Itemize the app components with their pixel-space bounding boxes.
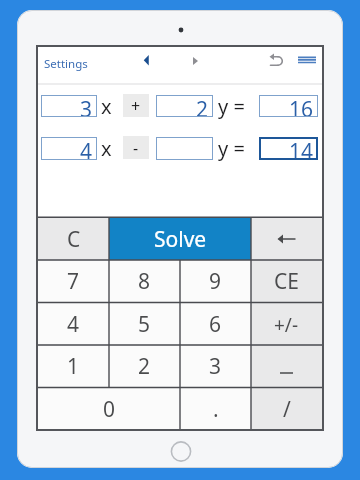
button[interactable]: Solve bbox=[109, 218, 251, 260]
staticText: y = bbox=[218, 135, 245, 162]
button[interactable]: 4 bbox=[41, 137, 97, 160]
button[interactable]: . bbox=[180, 388, 251, 430]
staticText: 6 bbox=[209, 310, 222, 339]
staticText: 3 bbox=[209, 352, 222, 381]
button[interactable] bbox=[294, 49, 320, 73]
button[interactable]: +/- bbox=[251, 303, 322, 346]
staticText: + bbox=[131, 95, 141, 117]
button[interactable]: 4 bbox=[38, 303, 109, 346]
staticText: 1 bbox=[67, 352, 80, 381]
button[interactable]: C bbox=[38, 218, 109, 260]
button[interactable] bbox=[136, 50, 152, 74]
staticText: +/- bbox=[274, 312, 299, 338]
button[interactable]: 16 bbox=[259, 95, 318, 117]
button[interactable]: Settings bbox=[44, 49, 94, 79]
staticText: Solve bbox=[154, 225, 207, 254]
button[interactable] bbox=[251, 345, 322, 388]
button[interactable]: 8 bbox=[109, 260, 180, 303]
staticText: 9 bbox=[209, 267, 222, 296]
staticText: CE bbox=[274, 267, 299, 296]
staticText: 2 bbox=[138, 352, 151, 381]
button[interactable]: 5 bbox=[109, 303, 180, 346]
staticText: 4 bbox=[67, 310, 80, 339]
button[interactable]: 6 bbox=[180, 303, 251, 346]
button[interactable]: / bbox=[251, 388, 322, 430]
staticText: . bbox=[213, 395, 219, 424]
staticText: 2 bbox=[196, 95, 209, 117]
staticText: y = bbox=[218, 93, 245, 120]
staticText: Settings bbox=[44, 56, 88, 72]
staticText: 3 bbox=[80, 95, 93, 117]
button[interactable]: 14 bbox=[259, 137, 318, 160]
staticText: 4 bbox=[80, 137, 93, 160]
button[interactable] bbox=[266, 49, 286, 73]
button[interactable]: 7 bbox=[38, 260, 109, 303]
button[interactable]: 3 bbox=[180, 345, 251, 388]
button[interactable] bbox=[186, 50, 202, 74]
button[interactable]: - bbox=[123, 136, 149, 159]
button[interactable]: 9 bbox=[180, 260, 251, 303]
staticText: 5 bbox=[138, 310, 151, 339]
button[interactable]: 1 bbox=[38, 345, 109, 388]
staticText: 8 bbox=[138, 267, 151, 296]
button[interactable] bbox=[251, 218, 322, 260]
staticText: 14 bbox=[289, 137, 314, 160]
staticText: C bbox=[67, 225, 81, 254]
button[interactable]: 2 bbox=[156, 95, 213, 117]
button[interactable] bbox=[156, 137, 213, 160]
staticText: / bbox=[283, 395, 291, 424]
button[interactable]: 2 bbox=[109, 345, 180, 388]
button[interactable]: CE bbox=[251, 260, 322, 303]
staticText: 16 bbox=[289, 95, 314, 117]
staticText: x bbox=[101, 135, 112, 162]
staticText: x bbox=[101, 93, 112, 120]
button[interactable]: 3 bbox=[41, 95, 97, 117]
staticText: 0 bbox=[103, 395, 116, 424]
button[interactable]: 0 bbox=[38, 388, 180, 430]
staticText: - bbox=[133, 137, 139, 159]
staticText: 7 bbox=[67, 267, 80, 296]
button[interactable]: + bbox=[123, 94, 149, 117]
